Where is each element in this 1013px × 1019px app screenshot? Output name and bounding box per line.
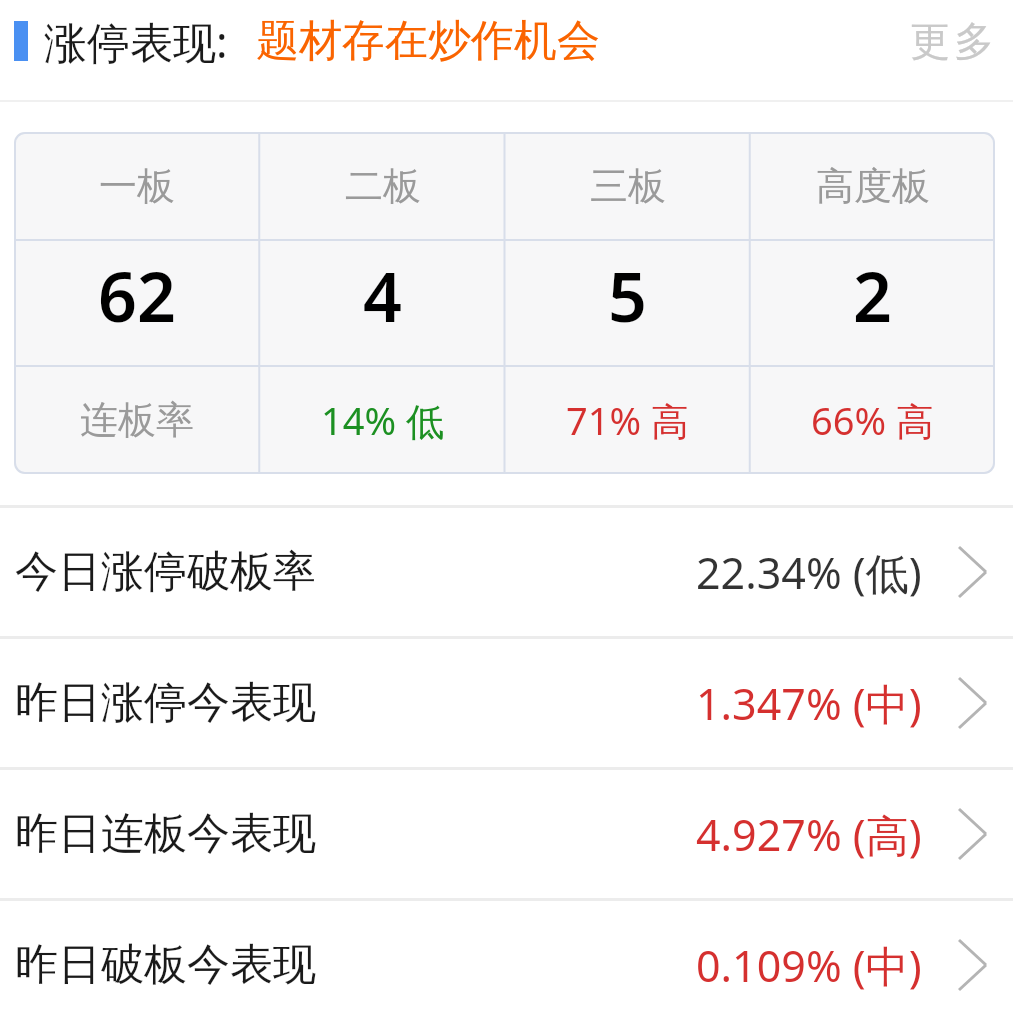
button[interactable]: 昨日连板今表现 bbox=[0, 767, 1013, 898]
staticText: 昨日连板今表现 bbox=[15, 807, 316, 861]
staticText: 三板 bbox=[590, 162, 666, 210]
staticText: 4.927% (高) bbox=[696, 805, 922, 864]
staticText: 62 bbox=[98, 249, 176, 342]
button[interactable]: 更多 bbox=[887, 2, 1013, 80]
staticText: 一板 bbox=[99, 162, 175, 210]
button[interactable]: 昨日破板今表现 bbox=[0, 898, 1013, 1019]
staticText: 22.34% (低) bbox=[696, 543, 922, 602]
staticText: 高度板 bbox=[816, 162, 930, 210]
staticText: 昨日涨停今表现 bbox=[15, 676, 316, 730]
other: 查看详情 bbox=[956, 806, 989, 862]
staticText: 涨停表现: bbox=[44, 12, 228, 71]
staticText: 5 bbox=[608, 249, 647, 342]
staticText: 二板 bbox=[345, 162, 421, 210]
staticText: 2 bbox=[853, 249, 892, 342]
staticText: 14% 低 bbox=[321, 394, 444, 446]
other: 查看详情 bbox=[956, 675, 989, 731]
staticText: 1.347% (中) bbox=[696, 674, 922, 733]
other: 查看详情 bbox=[956, 544, 989, 600]
other: 查看详情 bbox=[956, 937, 989, 993]
staticText: 题材存在炒作机会 bbox=[256, 14, 600, 68]
staticText: 连板率 bbox=[80, 396, 194, 444]
staticText: 今日涨停破板率 bbox=[15, 545, 316, 599]
button[interactable]: 今日涨停破板率 bbox=[0, 505, 1013, 636]
staticText: 66% 高 bbox=[811, 394, 934, 446]
staticText: 71% 高 bbox=[566, 394, 689, 446]
staticText: 4 bbox=[363, 249, 402, 342]
staticText: 0.109% (中) bbox=[696, 936, 922, 995]
button[interactable]: 昨日涨停今表现 bbox=[0, 636, 1013, 767]
staticText: 更多 bbox=[908, 16, 996, 66]
staticText: 昨日破板今表现 bbox=[15, 938, 316, 992]
